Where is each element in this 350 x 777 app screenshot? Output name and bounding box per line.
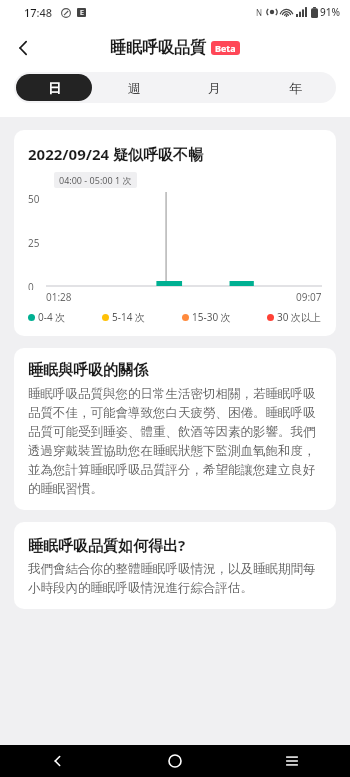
- button[interactable]: 月: [176, 74, 253, 101]
- staticText: 0: [28, 280, 34, 290]
- staticText: N: [256, 7, 263, 18]
- staticText: 30 次以上: [277, 310, 322, 324]
- button[interactable]: Recent apps: [233, 745, 350, 777]
- staticText: 01:28: [46, 290, 72, 304]
- staticText: Beta: [215, 42, 236, 54]
- button[interactable]: 日: [16, 74, 92, 101]
- button[interactable]: Back: [0, 745, 116, 777]
- staticText: 睡眠與呼吸的關係: [28, 361, 148, 380]
- button[interactable]: Home: [116, 745, 233, 777]
- staticText: 日: [48, 80, 61, 96]
- staticText: 睡眠呼吸品質: [110, 38, 206, 58]
- staticText: 5-14 次: [112, 310, 145, 324]
- staticText: 我們會結合你的整體睡眠呼吸情況，以及睡眠期間每小時段內的睡眠呼吸情況進行綜合評估…: [28, 561, 322, 596]
- staticText: 睡眠呼吸品質如何得出?: [28, 535, 186, 555]
- staticText: 09:07: [296, 290, 322, 304]
- button[interactable]: 睡眠呼吸品質如何得出?: [14, 522, 336, 609]
- staticText: 週: [128, 80, 141, 96]
- staticText: 91%: [320, 5, 340, 19]
- staticText: 04:00 - 05:00 1 次: [59, 174, 132, 186]
- staticText: 2022/09/24 疑似呼吸不暢: [28, 144, 203, 164]
- staticText: 50: [28, 192, 40, 206]
- staticText: 睡眠呼吸品質與您的日常生活密切相關，若睡眠呼吸品質不佳，可能會導致您白天疲勞、困…: [28, 386, 322, 497]
- button[interactable]: 年: [257, 74, 334, 101]
- button[interactable]: Back: [6, 30, 42, 66]
- staticText: 17:48: [24, 5, 53, 20]
- staticText: 年: [289, 80, 302, 96]
- staticText: 25: [28, 236, 40, 250]
- staticText: 15-30 次: [192, 310, 231, 324]
- staticText: 月: [208, 80, 221, 96]
- staticText: 0-4 次: [38, 310, 66, 324]
- button[interactable]: 睡眠與呼吸的關係: [14, 348, 336, 510]
- staticText: E: [80, 8, 84, 17]
- button[interactable]: 週: [96, 74, 172, 101]
